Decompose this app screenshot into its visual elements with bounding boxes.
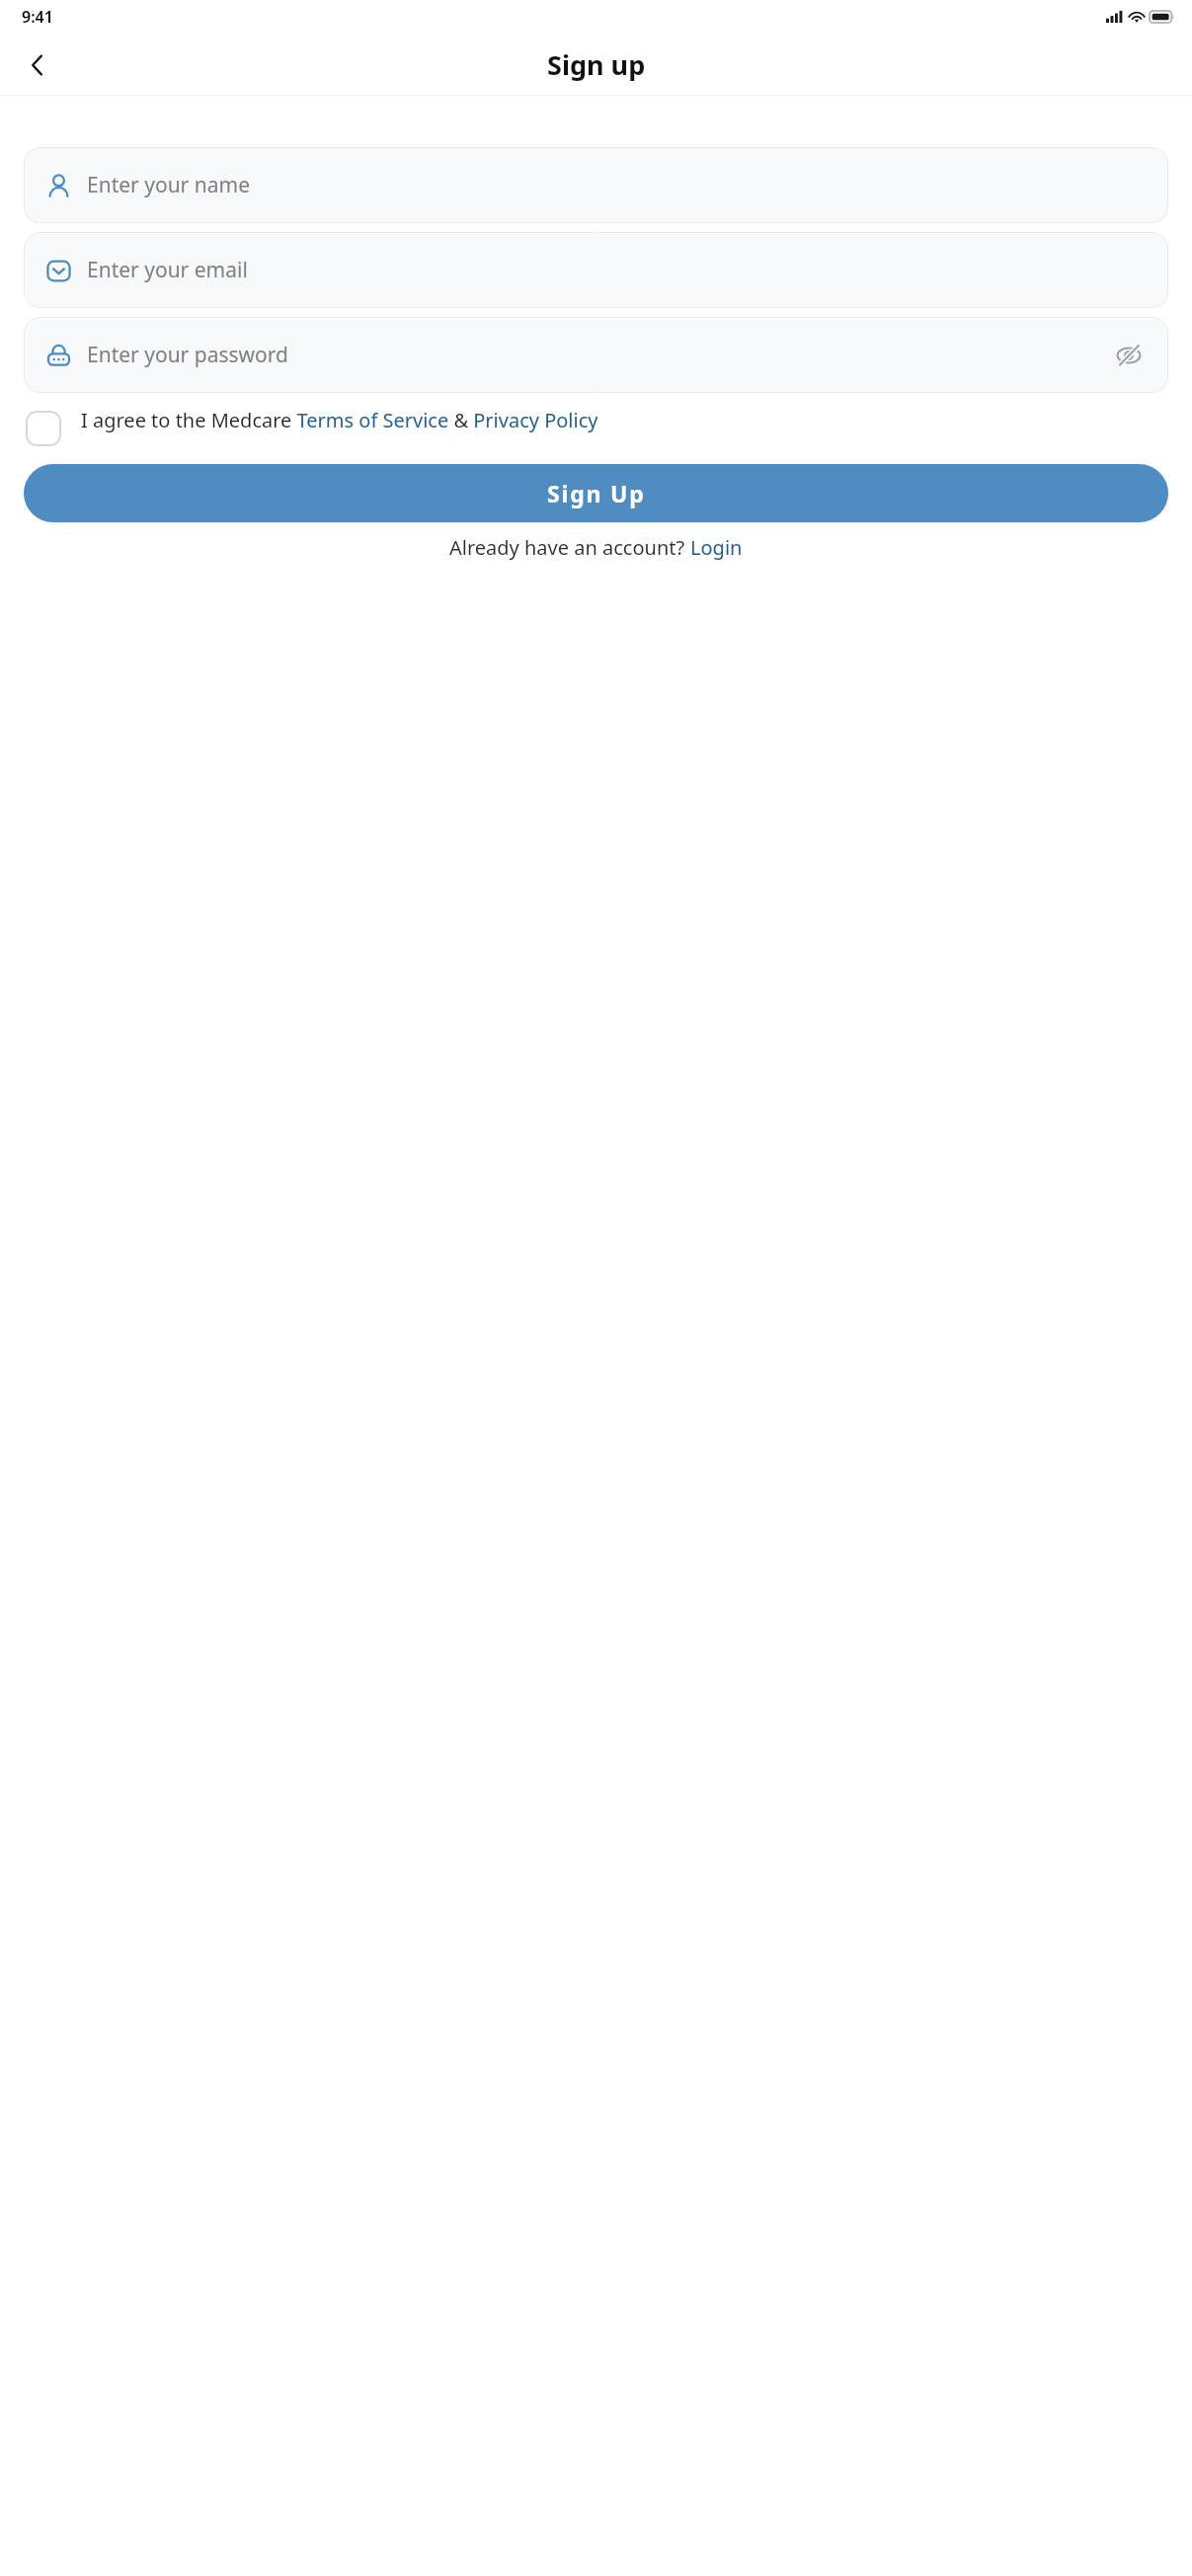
staticText: I agree to the Medcare Terms of Service … (81, 407, 598, 433)
staticText: Enter your name (87, 171, 250, 199)
staticText: 9:41 (22, 6, 53, 28)
button[interactable]: Enter your name (24, 147, 1168, 223)
button[interactable]: Back (10, 38, 65, 93)
staticText: Sign up (547, 46, 646, 83)
staticText: Already have an account? (449, 534, 690, 561)
button[interactable]: Enter your email (24, 232, 1168, 308)
button[interactable]: Sign Up (24, 464, 1168, 522)
staticText: Enter your password (87, 341, 288, 369)
button[interactable]: Already have an account? (449, 534, 743, 561)
staticText: Login (690, 534, 743, 561)
button[interactable]: Show password (1109, 336, 1149, 375)
staticText: Enter your email (87, 256, 248, 284)
button[interactable]: Agree to terms (26, 411, 61, 446)
staticText: Sign Up (547, 478, 646, 508)
button[interactable]: Agree to terms (24, 401, 1168, 452)
button[interactable]: Enter your password (24, 317, 1168, 393)
